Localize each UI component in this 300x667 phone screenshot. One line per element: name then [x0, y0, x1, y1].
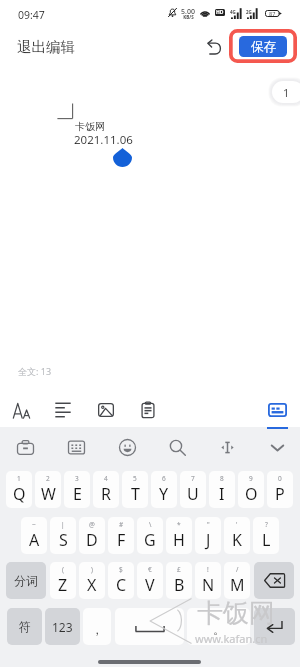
button[interactable]: 4: [93, 471, 119, 508]
button[interactable]: 保存: [239, 36, 287, 57]
staticText: Q: [13, 483, 26, 505]
button[interactable]: 剪贴板: [130, 392, 166, 428]
staticText: K: [232, 529, 242, 551]
button[interactable]: 图片: [88, 392, 124, 428]
button[interactable]: €: [137, 562, 163, 599]
button[interactable]: 移动光标: [209, 429, 245, 465]
button[interactable]: 退出编辑: [8, 33, 88, 61]
staticText: C: [116, 574, 127, 596]
button[interactable]: $: [108, 562, 134, 599]
staticText: X: [87, 574, 97, 596]
staticText: 分词: [14, 573, 38, 588]
button[interactable]: 句号: [187, 608, 250, 645]
button[interactable]: ": [195, 517, 221, 554]
button[interactable]: 6: [151, 471, 177, 508]
button[interactable]: ，: [83, 608, 111, 645]
staticText: T: [131, 483, 140, 505]
staticText: S: [59, 529, 68, 551]
staticText: 1: [283, 85, 290, 100]
staticText: 0: [278, 474, 282, 483]
button[interactable]: £: [166, 562, 192, 599]
button[interactable]: 9: [238, 471, 264, 508]
button[interactable]: *: [166, 517, 192, 554]
button[interactable]: 8: [209, 471, 235, 508]
staticText: 2: [46, 474, 50, 483]
button[interactable]: 符: [7, 608, 42, 645]
staticText: HD: [216, 9, 224, 16]
button[interactable]: 空格: [115, 608, 184, 645]
staticText: £: [177, 565, 181, 574]
staticText: 卡饭网: [197, 597, 275, 630]
button[interactable]: 1: [272, 81, 300, 103]
staticText: 7: [191, 474, 195, 483]
button[interactable]: 表情: [109, 429, 145, 465]
button[interactable]: 7: [180, 471, 206, 508]
staticText: J: [206, 529, 211, 551]
button[interactable]: #: [108, 517, 134, 554]
button[interactable]: |: [50, 517, 76, 554]
button[interactable]: @: [79, 517, 105, 554]
button[interactable]: \: [137, 517, 163, 554]
staticText: 3: [75, 474, 79, 483]
button[interactable]: !: [195, 562, 221, 599]
staticText: 4: [104, 474, 108, 483]
staticText: Z: [58, 574, 68, 596]
staticText: 符: [19, 619, 31, 634]
button[interactable]: ): [79, 562, 105, 599]
button[interactable]: 123: [45, 608, 80, 645]
button[interactable]: 2: [35, 471, 61, 508]
button[interactable]: (: [50, 562, 76, 599]
staticText: ): [91, 565, 93, 574]
button[interactable]: 字体: [3, 392, 39, 428]
button[interactable]: 键盘: [259, 392, 295, 428]
staticText: ，: [91, 622, 103, 637]
staticText: @: [89, 520, 95, 529]
button[interactable]: /: [224, 562, 250, 599]
button[interactable]: 5: [122, 471, 148, 508]
staticText: H: [173, 529, 185, 551]
staticText: €: [148, 565, 152, 574]
button[interactable]: ': [224, 517, 250, 554]
button[interactable]: 3: [64, 471, 90, 508]
staticText: E: [73, 483, 82, 505]
button[interactable]: ~: [21, 517, 47, 554]
staticText: U: [187, 483, 199, 505]
button[interactable]: 0: [267, 471, 293, 508]
button[interactable]: 收起键盘: [259, 429, 295, 465]
button[interactable]: 退格: [254, 562, 294, 599]
button[interactable]: 剪贴板: [7, 429, 43, 465]
button[interactable]: 对齐: [45, 392, 81, 428]
staticText: ": [207, 520, 210, 529]
staticText: 6: [162, 474, 166, 483]
staticText: 8: [220, 474, 224, 483]
staticText: ~: [32, 520, 36, 529]
button[interactable]: 键盘设置: [58, 429, 94, 465]
button[interactable]: 分词: [6, 562, 46, 599]
staticText: N: [202, 574, 215, 596]
staticText: A: [29, 529, 40, 551]
staticText: 5: [133, 474, 137, 483]
staticText: Y: [159, 483, 169, 505]
staticText: KB/S: [183, 14, 194, 20]
staticText: #: [119, 520, 124, 529]
button[interactable]: 撤销: [201, 34, 227, 60]
button[interactable]: 回车: [254, 608, 295, 645]
staticText: *: [177, 520, 181, 529]
staticText: 87: [269, 10, 276, 17]
staticText: 123: [52, 619, 73, 635]
staticText: 9: [249, 474, 253, 483]
staticText: !: [207, 565, 209, 574]
staticText: www.kafan.cn: [195, 631, 268, 646]
staticText: W: [41, 483, 56, 505]
staticText: 保存: [251, 39, 276, 55]
button[interactable]: ?: [253, 517, 279, 554]
staticText: ': [236, 520, 238, 529]
staticText: B: [174, 574, 185, 596]
button[interactable]: 1: [6, 471, 32, 508]
staticText: V: [145, 574, 155, 596]
staticText: \: [149, 520, 152, 529]
staticText: $: [119, 565, 123, 574]
staticText: (: [62, 565, 64, 574]
staticText: R: [101, 483, 111, 505]
button[interactable]: 搜索: [159, 429, 195, 465]
